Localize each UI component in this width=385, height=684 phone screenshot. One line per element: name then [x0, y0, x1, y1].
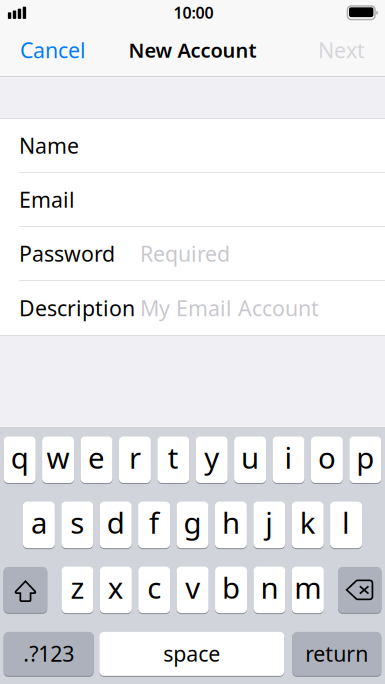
button[interactable]: l — [330, 502, 362, 548]
staticText: p — [356, 438, 374, 477]
staticText: Next — [318, 36, 365, 64]
staticText: New Account — [128, 37, 256, 63]
staticText: .?123 — [23, 639, 74, 667]
staticText: e — [88, 438, 105, 477]
button[interactable]: b — [215, 567, 247, 613]
staticText: n — [260, 568, 278, 607]
button[interactable]: t — [157, 436, 189, 483]
staticText: Required — [140, 239, 230, 268]
button[interactable]: return — [292, 632, 381, 676]
button[interactable]: w — [42, 436, 74, 483]
staticText: f — [149, 503, 159, 542]
staticText: b — [222, 568, 240, 607]
staticText: j — [265, 503, 273, 542]
staticText: Description — [19, 294, 135, 322]
staticText: l — [342, 503, 350, 542]
button[interactable]: m — [292, 567, 324, 613]
button[interactable]: space — [99, 632, 284, 676]
button[interactable]: y — [196, 436, 228, 483]
button[interactable]: h — [215, 502, 247, 548]
staticText: a — [31, 503, 47, 542]
staticText: r — [129, 438, 141, 477]
button[interactable]: .?123 — [4, 632, 94, 676]
staticText: g — [183, 503, 201, 542]
staticText: t — [168, 438, 179, 477]
button[interactable]: a — [23, 502, 55, 548]
staticText: c — [147, 568, 161, 607]
button[interactable]: Shift — [4, 567, 47, 613]
staticText: d — [107, 503, 125, 542]
button[interactable]: z — [61, 567, 93, 613]
staticText: 10:00 — [173, 2, 213, 23]
staticText: i — [284, 438, 292, 477]
button[interactable]: r — [119, 436, 151, 483]
button[interactable]: c — [138, 567, 170, 613]
button[interactable]: Description — [0, 281, 385, 335]
button[interactable]: Email — [0, 173, 385, 227]
button[interactable]: e — [80, 436, 112, 483]
staticText: Name — [19, 131, 79, 160]
staticText: x — [108, 568, 124, 607]
button[interactable]: k — [292, 502, 324, 548]
button[interactable]: g — [176, 502, 208, 548]
staticText: My Email Account — [140, 294, 319, 322]
button[interactable]: p — [349, 436, 381, 483]
button[interactable]: j — [253, 502, 285, 548]
staticText: u — [241, 438, 259, 477]
staticText: o — [318, 438, 336, 477]
staticText: h — [222, 503, 240, 542]
button[interactable]: Next — [306, 29, 365, 75]
button[interactable]: f — [138, 502, 170, 548]
button[interactable]: u — [234, 436, 266, 483]
staticText: Email — [19, 185, 75, 214]
staticText: space — [163, 639, 220, 667]
staticText: s — [70, 503, 84, 542]
button[interactable]: n — [253, 567, 285, 613]
staticText: z — [70, 568, 84, 607]
button[interactable]: d — [100, 502, 132, 548]
staticText: y — [204, 438, 219, 477]
staticText: Cancel — [20, 36, 86, 64]
button[interactable]: Delete — [338, 567, 381, 613]
staticText: Password — [19, 239, 115, 268]
staticText: return — [305, 639, 368, 667]
button[interactable]: i — [272, 436, 304, 483]
button[interactable]: s — [61, 502, 93, 548]
button[interactable]: x — [100, 567, 132, 613]
button[interactable]: Password — [0, 227, 385, 281]
staticText: w — [47, 438, 70, 477]
button[interactable]: o — [311, 436, 343, 483]
staticText: k — [300, 503, 316, 542]
button[interactable]: v — [177, 567, 209, 613]
button[interactable]: Name — [0, 119, 385, 173]
staticText: v — [185, 568, 200, 607]
button[interactable]: Cancel — [20, 29, 98, 75]
staticText: q — [11, 438, 29, 477]
button[interactable]: q — [4, 436, 36, 483]
staticText: m — [294, 568, 321, 607]
